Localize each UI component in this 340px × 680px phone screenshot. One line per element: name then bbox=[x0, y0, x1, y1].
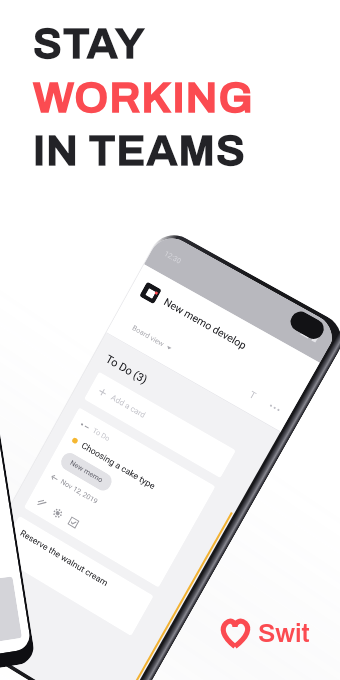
staticText: Swit bbox=[258, 619, 310, 647]
staticText: Reserve the walnut cream bbox=[18, 528, 110, 589]
staticText: IN TEAMS bbox=[33, 127, 246, 174]
button[interactable]: More options bbox=[269, 404, 280, 412]
staticText: 12:30 bbox=[162, 249, 183, 266]
staticText: STAY bbox=[33, 20, 146, 67]
staticText: T bbox=[247, 389, 258, 402]
staticText: WORKING bbox=[33, 74, 254, 121]
button[interactable]: Add a card bbox=[84, 372, 236, 478]
button[interactable]: To Do bbox=[24, 407, 216, 588]
staticText: To Do (3) bbox=[104, 352, 150, 386]
button[interactable]: Reserve the walnut cream bbox=[0, 516, 154, 636]
staticText: Nov 12, 2019 bbox=[59, 477, 99, 506]
staticText: New memo bbox=[68, 459, 104, 485]
staticText: Board view bbox=[130, 324, 165, 349]
staticText: Choosing a cake type bbox=[80, 440, 157, 492]
staticText: To Do bbox=[91, 426, 112, 444]
staticText: Add a card bbox=[109, 393, 147, 420]
button[interactable]: Text style bbox=[247, 389, 258, 402]
button[interactable]: Swit bbox=[219, 618, 310, 648]
button[interactable]: New memo develop bbox=[133, 270, 311, 396]
staticText: New memo develop bbox=[162, 296, 249, 352]
